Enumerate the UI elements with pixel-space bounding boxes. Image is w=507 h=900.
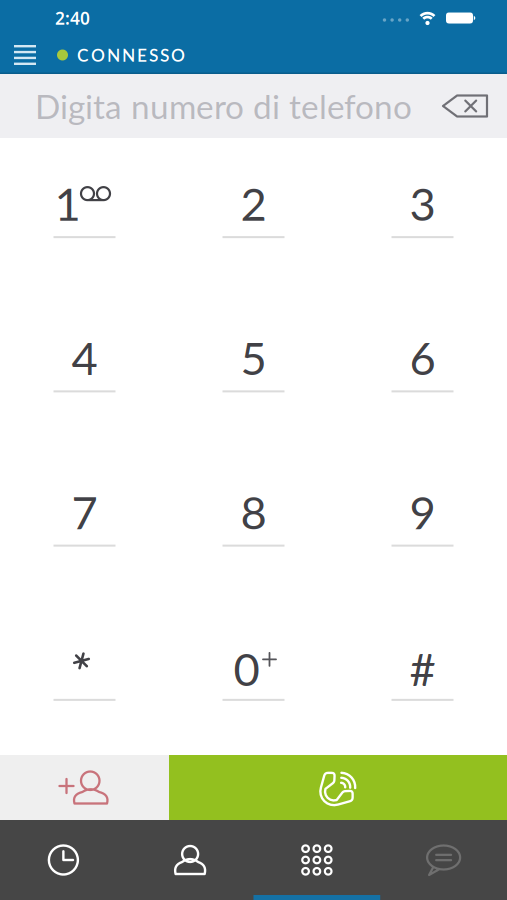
button[interactable]: 3 xyxy=(338,138,507,292)
staticText: 8 xyxy=(240,484,266,539)
button[interactable]: Contatti xyxy=(127,820,254,900)
button[interactable]: 0 xyxy=(169,601,338,755)
button[interactable]: 4 xyxy=(0,292,169,446)
staticText: 2 xyxy=(240,176,266,230)
button[interactable]: # xyxy=(338,601,507,755)
button[interactable]: 9 xyxy=(338,446,507,601)
staticText: 2:40 xyxy=(55,6,90,29)
staticText: 9 xyxy=(409,484,435,539)
button[interactable]: 7 xyxy=(0,446,169,601)
staticText: 3 xyxy=(409,176,435,230)
staticText: 7 xyxy=(71,484,97,539)
staticText: 5 xyxy=(240,330,266,385)
button[interactable]: Messaggi xyxy=(380,820,507,900)
button[interactable]: 5 xyxy=(169,292,338,446)
staticText: # xyxy=(409,641,435,696)
staticText: 0 xyxy=(233,641,259,696)
button[interactable]: 1 xyxy=(0,138,169,292)
button[interactable]: 2 xyxy=(169,138,338,292)
staticText: Digita numero di telefono xyxy=(35,86,412,126)
button[interactable]: Aggiungi contatto xyxy=(0,755,169,820)
staticText: 4 xyxy=(71,330,97,385)
button[interactable] xyxy=(0,601,169,755)
staticText: C O N N E S S O xyxy=(77,45,185,65)
staticText: 6 xyxy=(409,330,435,385)
button[interactable]: Chiama xyxy=(169,755,507,820)
staticText: 1 xyxy=(54,176,80,230)
button[interactable]: Cancella xyxy=(443,95,507,116)
button[interactable]: Recenti xyxy=(0,820,127,900)
button[interactable]: 8 xyxy=(169,446,338,601)
button[interactable]: Menu xyxy=(0,45,36,65)
button[interactable]: Tastierino xyxy=(253,820,380,900)
button[interactable]: 6 xyxy=(338,292,507,446)
